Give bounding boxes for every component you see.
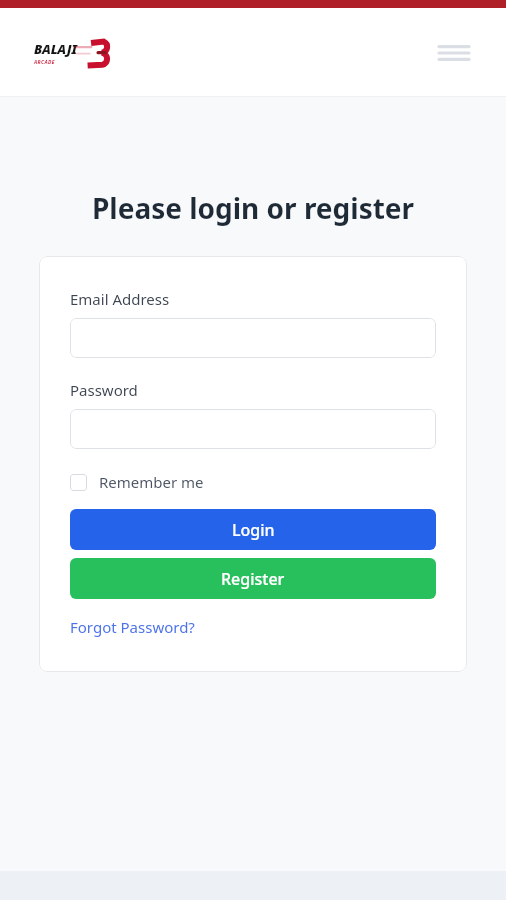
button[interactable]: Menu [432, 31, 476, 75]
staticText: Forgot Password? [70, 617, 195, 637]
staticText: Please login or register [0, 189, 506, 227]
staticText: BALAJI [34, 40, 77, 58]
staticText: Login [232, 519, 275, 541]
button[interactable]: Register [70, 558, 436, 599]
button[interactable]: Login [70, 509, 436, 550]
staticText: Email Address [70, 289, 170, 309]
staticText: ARCADE [34, 59, 55, 66]
button[interactable]: Balaji Arcade home [34, 37, 108, 69]
button[interactable]: Email Address input [70, 318, 436, 358]
button[interactable]: Password input [70, 409, 436, 449]
staticText: Password [70, 380, 138, 400]
staticText: Remember me [99, 472, 204, 492]
staticText: Register [221, 568, 285, 590]
button[interactable]: Forgot Password? [70, 615, 195, 639]
button[interactable]: Remember me [70, 470, 204, 494]
